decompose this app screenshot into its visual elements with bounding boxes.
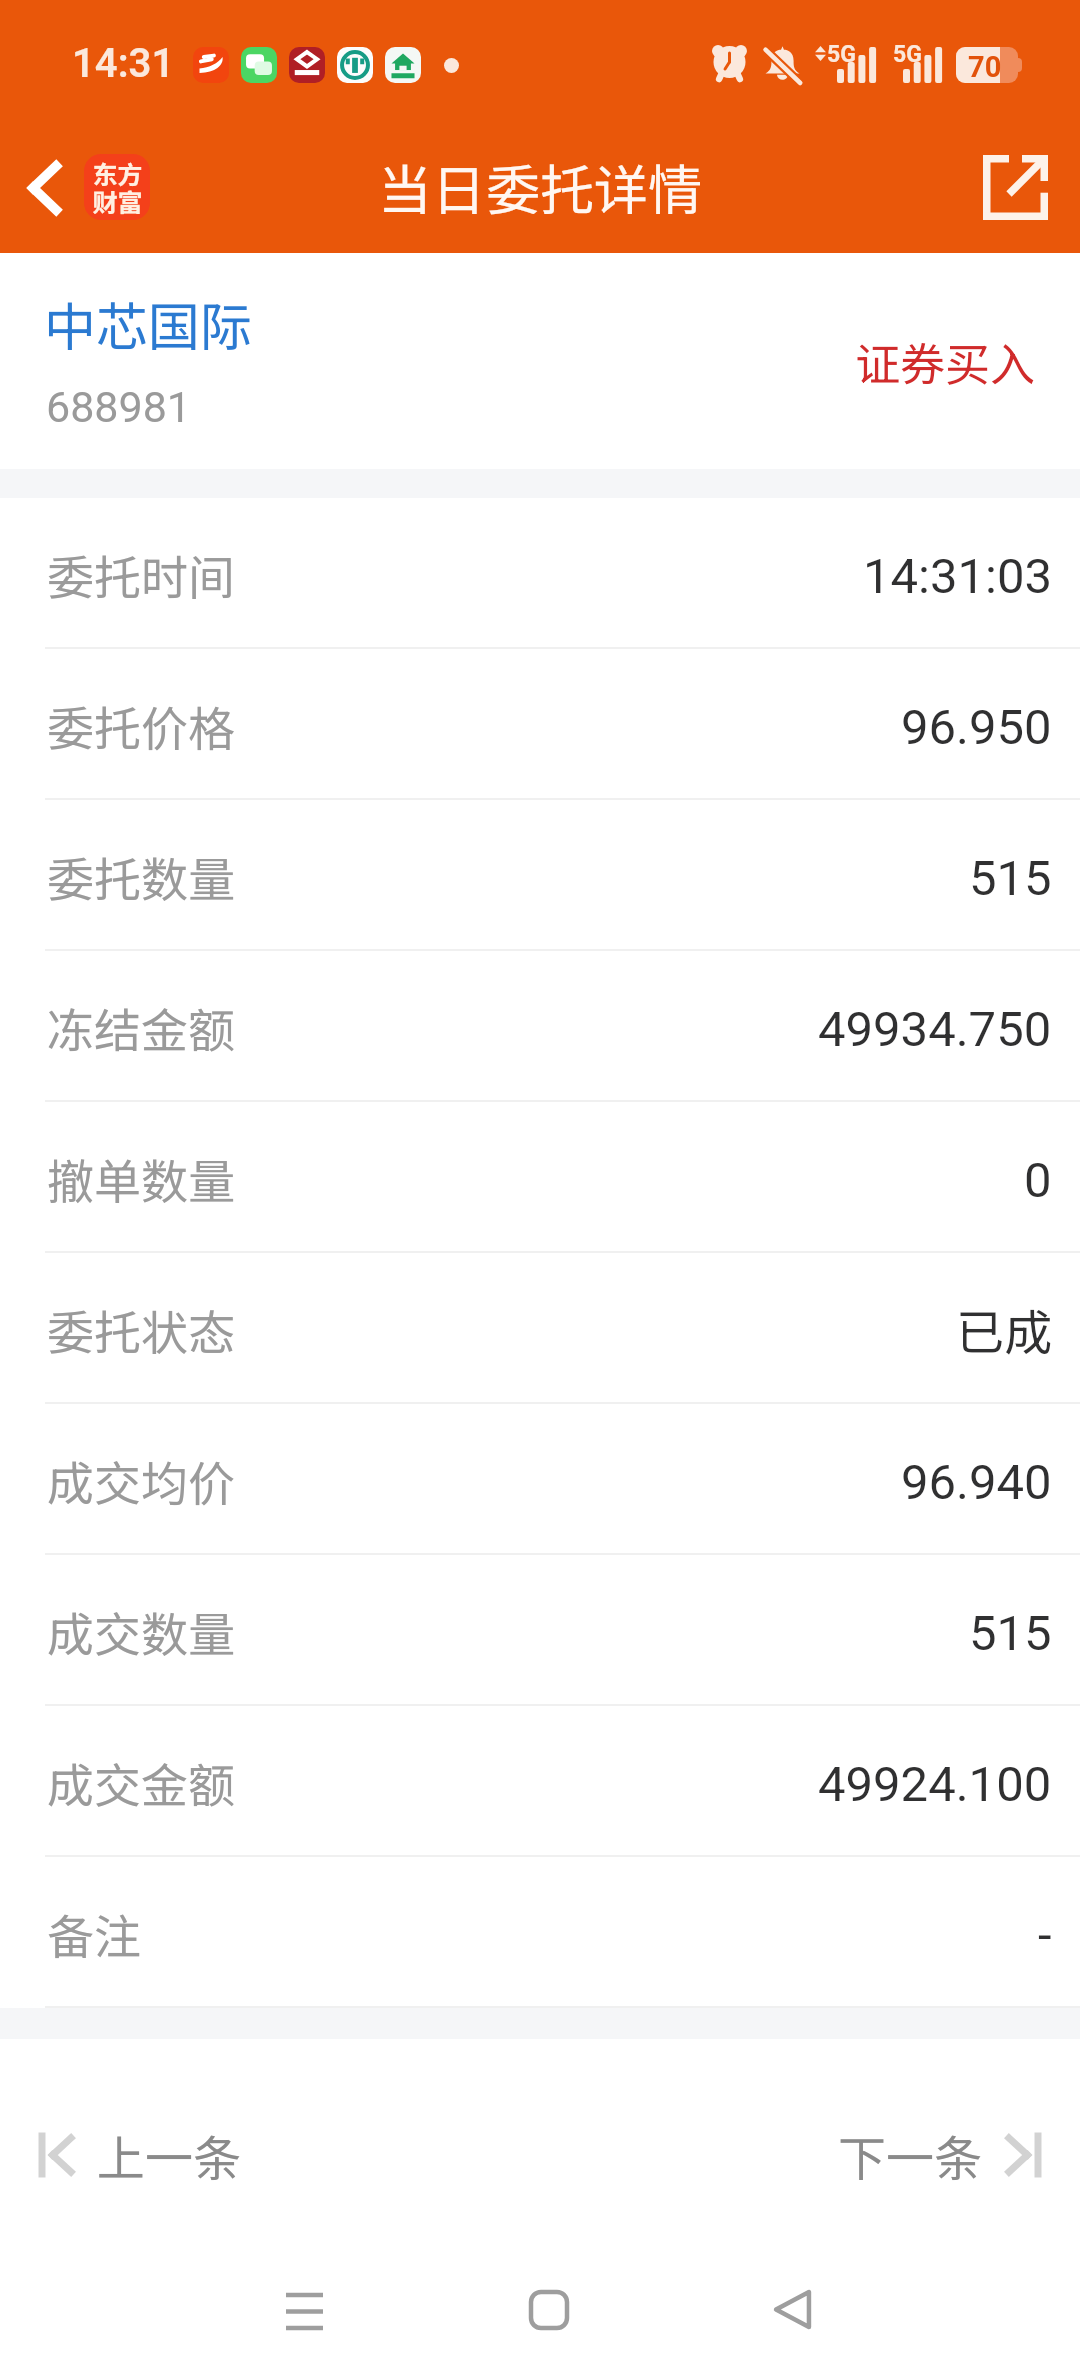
staticText: 成交金额 [47,1748,235,1816]
staticText: 96.950 [901,699,1052,756]
staticText: 证券买入 [855,329,1036,394]
button[interactable]: 备注 [0,1857,1080,2008]
button[interactable]: Home [459,2248,639,2376]
staticText: 14:31:03 [863,548,1052,605]
staticText: 委托时间 [47,540,235,608]
button[interactable]: 成交金额 [0,1706,1080,1857]
staticText: 14:31 [72,40,175,87]
button[interactable]: 委托数量 [0,800,1080,951]
staticText: 成交数量 [47,1597,235,1665]
button[interactable]: Back [703,2248,883,2376]
staticText: 中芯国际 [44,286,253,361]
staticText: 5G [893,41,922,68]
button[interactable]: 委托状态 [0,1253,1080,1404]
staticText: 上一条 [97,2120,242,2190]
button[interactable]: 撤单数量 [0,1102,1080,1253]
staticText: 49924.100 [818,1756,1052,1813]
staticText: 70 [968,50,1002,84]
button[interactable]: 冻结金额 [0,951,1080,1102]
staticText: 委托价格 [47,691,235,759]
button[interactable]: 委托时间 [0,498,1080,649]
staticText: 已成 [956,1294,1053,1364]
staticText: 委托状态 [47,1295,235,1363]
button[interactable]: 成交数量 [0,1555,1080,1706]
button[interactable]: Back [0,110,90,253]
button[interactable]: 成交均价 [0,1404,1080,1555]
staticText: 冻结金额 [47,993,235,1061]
staticText: 49934.750 [818,1001,1052,1058]
staticText: 688981 [46,382,191,432]
staticText: 515 [969,850,1052,907]
staticText: 东方 财富 [92,155,143,220]
button[interactable]: Share [949,116,1080,259]
staticText: 备注 [47,1899,141,1967]
staticText: 5G [827,41,856,68]
staticText: 下一条 [838,2120,983,2190]
button[interactable]: 委托价格 [0,649,1080,800]
button[interactable]: 下一条 [814,2096,1080,2214]
staticText: 委托数量 [47,842,235,910]
staticText: 当日委托详情 [378,147,702,225]
staticText: 成交均价 [47,1446,235,1514]
staticText: 0 [1024,1152,1052,1209]
button[interactable]: 上一条 [0,2096,266,2214]
staticText: - [1038,1907,1052,1964]
button[interactable]: Recent apps [213,2248,393,2376]
staticText: 撤单数量 [47,1144,235,1212]
button[interactable]: East Money logo [84,154,150,220]
staticText: 96.940 [901,1454,1052,1511]
staticText: 515 [969,1605,1052,1662]
